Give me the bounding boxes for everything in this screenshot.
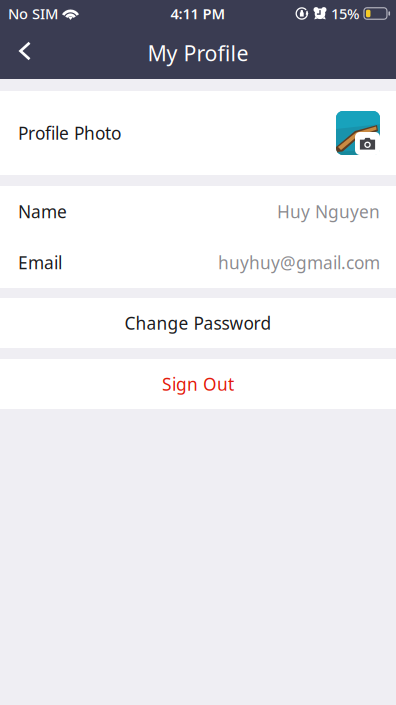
staticText: No SIM xyxy=(8,4,58,23)
staticText: huyhuy@gmail.com xyxy=(218,251,380,274)
button[interactable]: Change Password xyxy=(0,298,396,348)
button[interactable]: Name xyxy=(0,186,396,237)
button[interactable]: Email xyxy=(0,237,396,288)
staticText: My Profile xyxy=(147,39,248,67)
staticText: Sign Out xyxy=(162,372,234,395)
staticText: Huy Nguyen xyxy=(277,200,380,223)
staticText: Email xyxy=(18,251,62,274)
staticText: Change Password xyxy=(124,311,271,334)
staticText: 15% xyxy=(331,4,359,23)
staticText: 4:11 PM xyxy=(170,4,225,23)
button[interactable]: Profile Photo xyxy=(0,91,396,175)
button[interactable]: Back xyxy=(0,27,49,79)
staticText: Name xyxy=(18,200,67,223)
button[interactable]: Sign Out xyxy=(0,359,396,409)
staticText: Profile Photo xyxy=(18,121,121,144)
